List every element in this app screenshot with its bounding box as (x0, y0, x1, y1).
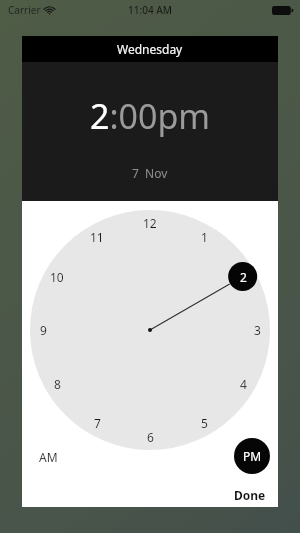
button[interactable]: Done (228, 482, 272, 508)
other: Battery full (272, 6, 293, 15)
staticText: 11 (90, 229, 104, 245)
button[interactable]: Wednesday (22, 36, 278, 62)
staticText: Wednesday (117, 41, 183, 57)
button[interactable]: 11 (84, 226, 110, 248)
other: Wi-Fi signal (44, 5, 55, 16)
staticText: 4 (240, 376, 247, 392)
staticText: 8 (54, 376, 61, 392)
staticText: 7 (94, 415, 101, 431)
button[interactable]: 1 (191, 226, 217, 248)
staticText: Carrier (8, 3, 41, 17)
staticText: 11:04 AM (128, 3, 172, 17)
button[interactable]: 2:00pm (82, 90, 219, 142)
button[interactable]: 3 (244, 319, 270, 341)
button[interactable]: 2 (230, 266, 256, 288)
button[interactable]: 10 (44, 266, 70, 288)
button[interactable]: 6 (137, 426, 163, 448)
staticText: PM (243, 448, 262, 464)
staticText: 1 (201, 229, 208, 245)
staticText: 2:00pm (90, 93, 211, 139)
staticText: 3 (254, 322, 261, 338)
staticText: 7 Nov (132, 165, 168, 181)
button[interactable]: PM (234, 438, 270, 474)
staticText: Done (234, 487, 266, 503)
button[interactable]: 9 (30, 319, 56, 341)
button[interactable]: 8 (44, 373, 70, 395)
staticText: 5 (201, 415, 208, 431)
button[interactable]: 4 (230, 373, 256, 395)
staticText: 2 (240, 269, 247, 285)
staticText: 12 (143, 215, 157, 231)
staticText: 6 (147, 429, 154, 445)
staticText: 10 (50, 269, 64, 285)
button[interactable]: AM (33, 444, 64, 470)
button[interactable]: 12 (137, 212, 163, 234)
button[interactable]: 5 (191, 412, 217, 434)
staticText: AM (39, 449, 58, 465)
button[interactable]: 7 (84, 412, 110, 434)
staticText: 9 (40, 322, 47, 338)
button[interactable]: 7 Nov (124, 162, 176, 184)
